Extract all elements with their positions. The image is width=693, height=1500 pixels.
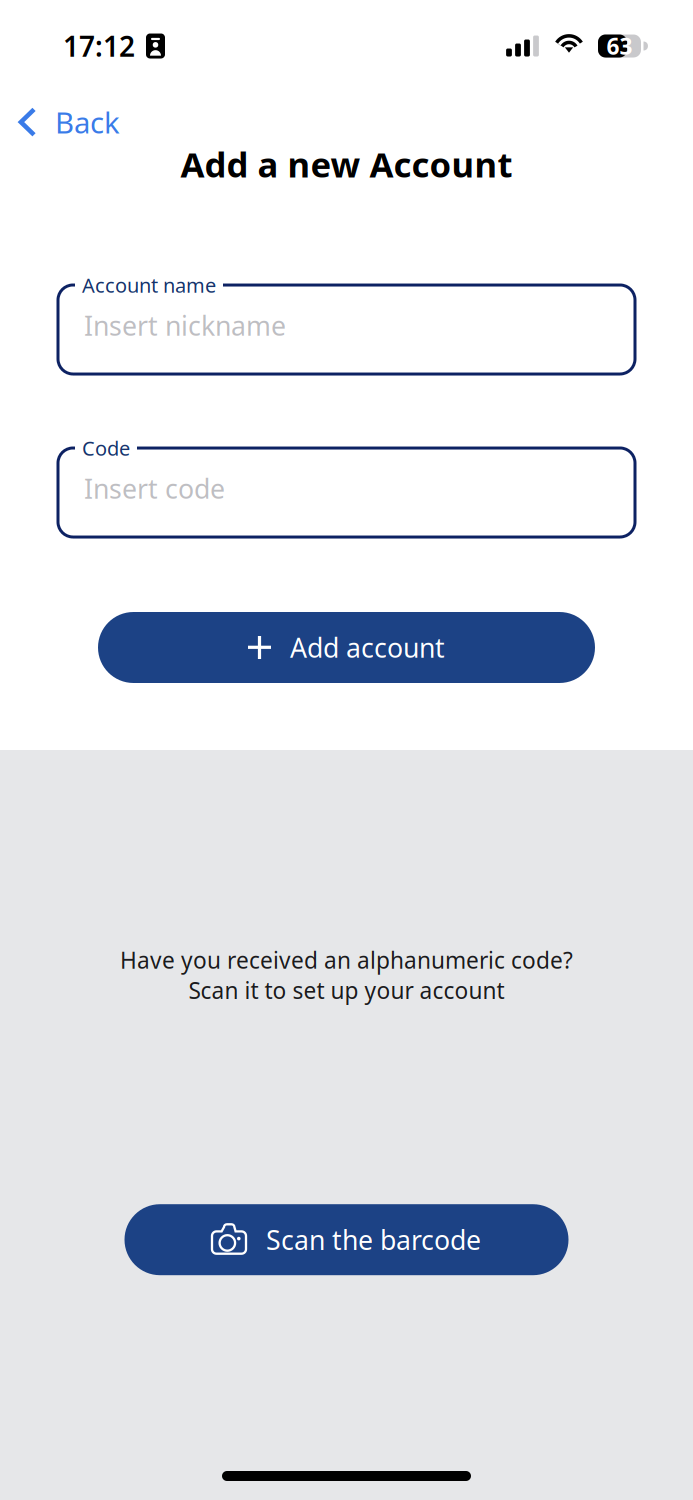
button[interactable]: Scan the barcode	[124, 1204, 568, 1275]
staticText: Insert nickname	[84, 308, 286, 343]
button[interactable]: Add account	[98, 612, 595, 683]
staticText: Account name	[82, 272, 216, 298]
staticText: Have you received an alphanumeric code?	[120, 945, 573, 975]
staticText: Add account	[290, 630, 445, 665]
staticText: 63	[606, 31, 632, 61]
staticText: Back	[55, 102, 120, 141]
staticText: Scan the barcode	[266, 1222, 481, 1257]
staticText: Scan it to set up your account	[188, 975, 504, 1005]
button[interactable]: Insert nickname	[58, 271, 635, 376]
staticText: Add a new Account	[180, 141, 512, 187]
staticText: 17:12	[63, 27, 135, 65]
staticText: Insert code	[84, 471, 225, 506]
button[interactable]: Back	[0, 96, 138, 147]
button[interactable]: Insert code	[58, 434, 635, 539]
staticText: Code	[82, 435, 130, 461]
